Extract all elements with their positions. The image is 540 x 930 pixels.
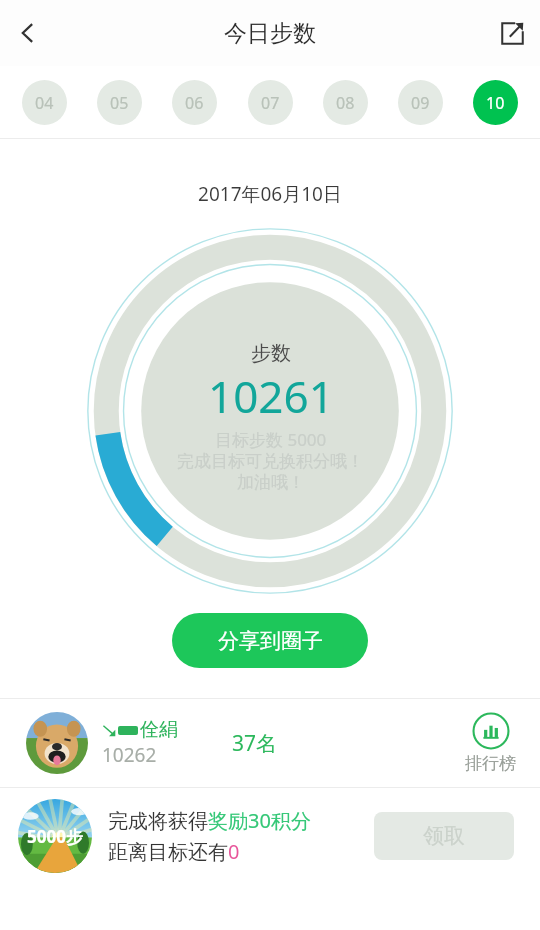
button[interactable]: 09	[398, 80, 443, 125]
button[interactable]: Back	[0, 5, 56, 61]
staticText: 步数	[251, 341, 291, 366]
staticText: 完成将获得奖励30积分	[108, 807, 311, 834]
staticText: 距离目标还有0	[108, 838, 240, 865]
button[interactable]: 分享到圈子	[172, 613, 368, 668]
button[interactable]: 07	[248, 80, 293, 125]
staticText: 06	[185, 92, 204, 114]
staticText: 07	[261, 92, 280, 114]
staticText: 08	[336, 92, 355, 114]
staticText: 领取	[423, 823, 465, 849]
staticText: 05	[110, 92, 129, 114]
staticText: 5000步	[27, 825, 83, 848]
button[interactable]: 领取	[374, 812, 514, 860]
staticText: 目标步数 5000	[215, 428, 327, 451]
staticText: 37名	[232, 729, 278, 758]
button[interactable]: 08	[323, 80, 368, 125]
staticText: 佺絹	[140, 718, 178, 742]
staticText: 2017年06月10日	[0, 181, 540, 207]
staticText: 完成目标可兑换积分哦！	[177, 451, 364, 472]
button[interactable]: Share	[484, 5, 540, 61]
button[interactable]: 佺絹	[0, 699, 540, 787]
button[interactable]: 04	[22, 80, 67, 125]
staticText: 分享到圈子	[218, 628, 323, 654]
button[interactable]: 排行榜	[465, 712, 516, 774]
button[interactable]: 06	[172, 80, 217, 125]
staticText: 10261	[208, 366, 334, 426]
staticText: 10	[486, 92, 505, 114]
staticText: 今日步数	[224, 19, 316, 48]
staticText: 04	[35, 92, 54, 114]
button[interactable]: 05	[97, 80, 142, 125]
staticText: 10262	[102, 742, 157, 768]
staticText: 加油哦！	[237, 472, 305, 493]
staticText: 09	[411, 92, 430, 114]
button[interactable]: 10	[473, 80, 518, 125]
staticText: 排行榜	[465, 753, 516, 774]
